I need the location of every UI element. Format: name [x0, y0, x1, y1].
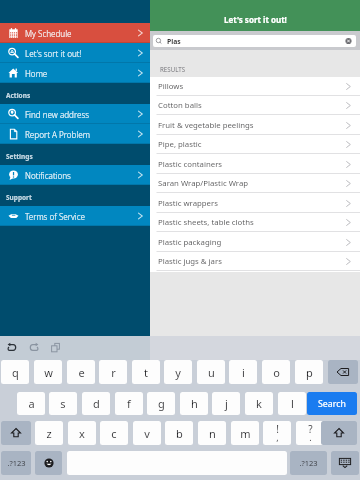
- staticText: Report A Problem: [25, 129, 91, 140]
- button[interactable]: k: [245, 392, 273, 415]
- button[interactable]: ?: [296, 421, 324, 445]
- button[interactable]: Hide keyboard: [331, 451, 359, 475]
- staticText: a: [28, 396, 35, 411]
- staticText: Actions: [6, 91, 31, 100]
- button[interactable]: .?123: [1, 451, 31, 475]
- button[interactable]: Fruit & vegetable peelings: [150, 116, 360, 135]
- staticText: Cotton balls: [158, 100, 202, 111]
- button[interactable]: w: [34, 360, 62, 384]
- staticText: Plastic sheets, table cloths: [158, 217, 254, 228]
- button[interactable]: c: [100, 421, 128, 445]
- button[interactable]: Let's sort it out!: [0, 43, 150, 63]
- button[interactable]: e: [67, 360, 95, 384]
- button[interactable]: d: [82, 392, 110, 415]
- staticText: Plastic jugs & jars: [158, 256, 222, 267]
- button[interactable]: f: [115, 392, 143, 415]
- button[interactable]: .?123: [290, 451, 327, 475]
- button[interactable]: t: [132, 360, 160, 384]
- button[interactable]: Notifications: [0, 165, 150, 185]
- button[interactable]: j: [212, 392, 240, 415]
- staticText: x: [79, 426, 85, 441]
- button[interactable]: Find new address: [0, 104, 150, 124]
- button[interactable]: y: [164, 360, 192, 384]
- button[interactable]: Pipe, plastic: [150, 135, 360, 154]
- staticText: Search: [318, 398, 346, 410]
- staticText: t: [144, 365, 148, 380]
- staticText: Home: [25, 68, 48, 79]
- button[interactable]: Shift: [1, 421, 31, 445]
- staticText: Plas: [167, 37, 181, 46]
- button[interactable]: Backspace: [328, 360, 358, 384]
- button[interactable]: Plastic packaging: [150, 233, 360, 252]
- button[interactable]: q: [1, 360, 29, 384]
- staticText: Find new address: [25, 109, 90, 120]
- button[interactable]: x: [68, 421, 96, 445]
- button[interactable]: o: [262, 360, 290, 384]
- staticText: ?: [308, 422, 313, 436]
- staticText: ,: [276, 431, 279, 443]
- button[interactable]: Plas: [153, 35, 356, 47]
- staticText: Pipe, plastic: [158, 139, 202, 150]
- staticText: z: [46, 426, 52, 441]
- button[interactable]: Plastic containers: [150, 155, 360, 174]
- button[interactable]: Pillows: [150, 77, 360, 96]
- button[interactable]: Report A Problem: [0, 124, 150, 144]
- staticText: Terms of Service: [25, 211, 85, 222]
- staticText: My Schedule: [25, 28, 72, 39]
- staticText: Plastic containers: [158, 159, 223, 170]
- staticText: m: [240, 426, 251, 441]
- button[interactable]: Terms of Service: [0, 206, 150, 226]
- staticText: r: [111, 365, 116, 380]
- button[interactable]: l: [278, 392, 306, 415]
- staticText: w: [44, 365, 53, 380]
- button[interactable]: My Schedule: [0, 23, 150, 43]
- staticText: g: [158, 396, 165, 411]
- button[interactable]: a: [17, 392, 45, 415]
- button[interactable]: n: [198, 421, 226, 445]
- staticText: .?123: [299, 458, 318, 468]
- button[interactable]: i: [229, 360, 257, 384]
- button[interactable]: Emoji: [35, 451, 62, 475]
- staticText: u: [208, 365, 215, 380]
- staticText: .: [309, 431, 312, 443]
- button[interactable]: Plastic jugs & jars: [150, 252, 360, 271]
- staticText: Fruit & vegetable peelings: [158, 120, 254, 131]
- staticText: Settings: [6, 152, 33, 161]
- button[interactable]: Home: [0, 63, 150, 83]
- button[interactable]: s: [49, 392, 77, 415]
- staticText: b: [176, 426, 183, 441]
- button[interactable]: p: [295, 360, 323, 384]
- staticText: o: [273, 365, 280, 380]
- staticText: !: [276, 422, 279, 436]
- button[interactable]: !: [263, 421, 291, 445]
- button[interactable]: Plastic wrappers: [150, 194, 360, 213]
- button[interactable]: g: [147, 392, 175, 415]
- button[interactable]: z: [35, 421, 63, 445]
- staticText: p: [306, 365, 313, 380]
- staticText: Let's sort it out!: [25, 48, 82, 59]
- button[interactable]: Saran Wrap/Plastic Wrap: [150, 174, 360, 193]
- button[interactable]: Plastic sheets, table cloths: [150, 213, 360, 232]
- staticText: s: [60, 396, 66, 411]
- button[interactable]: v: [133, 421, 161, 445]
- staticText: Notifications: [25, 170, 71, 181]
- button[interactable]: r: [99, 360, 127, 384]
- button[interactable]: m: [231, 421, 259, 445]
- staticText: y: [175, 365, 181, 380]
- button[interactable]: b: [165, 421, 193, 445]
- button[interactable]: u: [197, 360, 225, 384]
- staticText: Plastic wrappers: [158, 198, 218, 209]
- staticText: d: [93, 396, 100, 411]
- staticText: n: [209, 426, 216, 441]
- button[interactable]: Cotton balls: [150, 96, 360, 115]
- button[interactable]: Shift: [321, 421, 357, 445]
- staticText: RESULTS: [160, 65, 186, 73]
- staticText: h: [191, 396, 198, 411]
- button[interactable]: h: [180, 392, 208, 415]
- staticText: Support: [6, 193, 32, 202]
- staticText: .?123: [7, 458, 26, 468]
- button[interactable]: Search: [307, 392, 357, 415]
- staticText: Pillows: [158, 81, 184, 92]
- staticText: Saran Wrap/Plastic Wrap: [158, 178, 249, 189]
